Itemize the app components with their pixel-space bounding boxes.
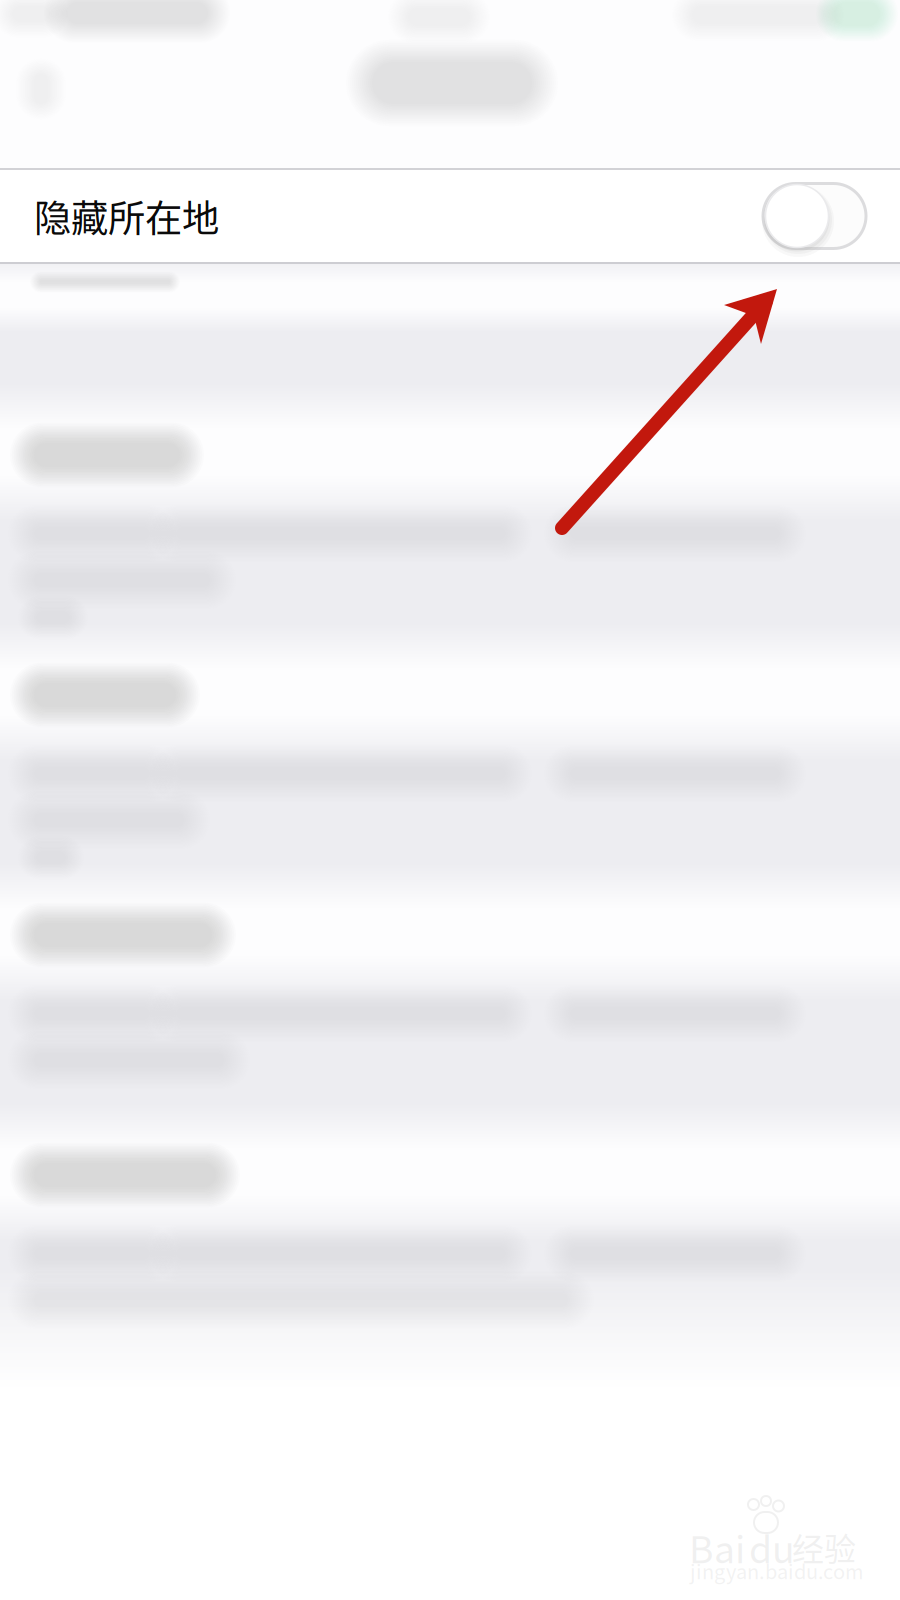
button[interactable]: 隐藏所在地 — [0, 170, 900, 262]
button[interactable]: 关 — [763, 183, 866, 248]
staticText: 经验 — [792, 1524, 856, 1570]
staticText: jingyan.baidu.com — [690, 1556, 864, 1585]
staticText: Bai — [689, 1520, 745, 1574]
staticText: 隐藏所在地 — [34, 189, 219, 243]
staticText: du — [749, 1520, 795, 1574]
